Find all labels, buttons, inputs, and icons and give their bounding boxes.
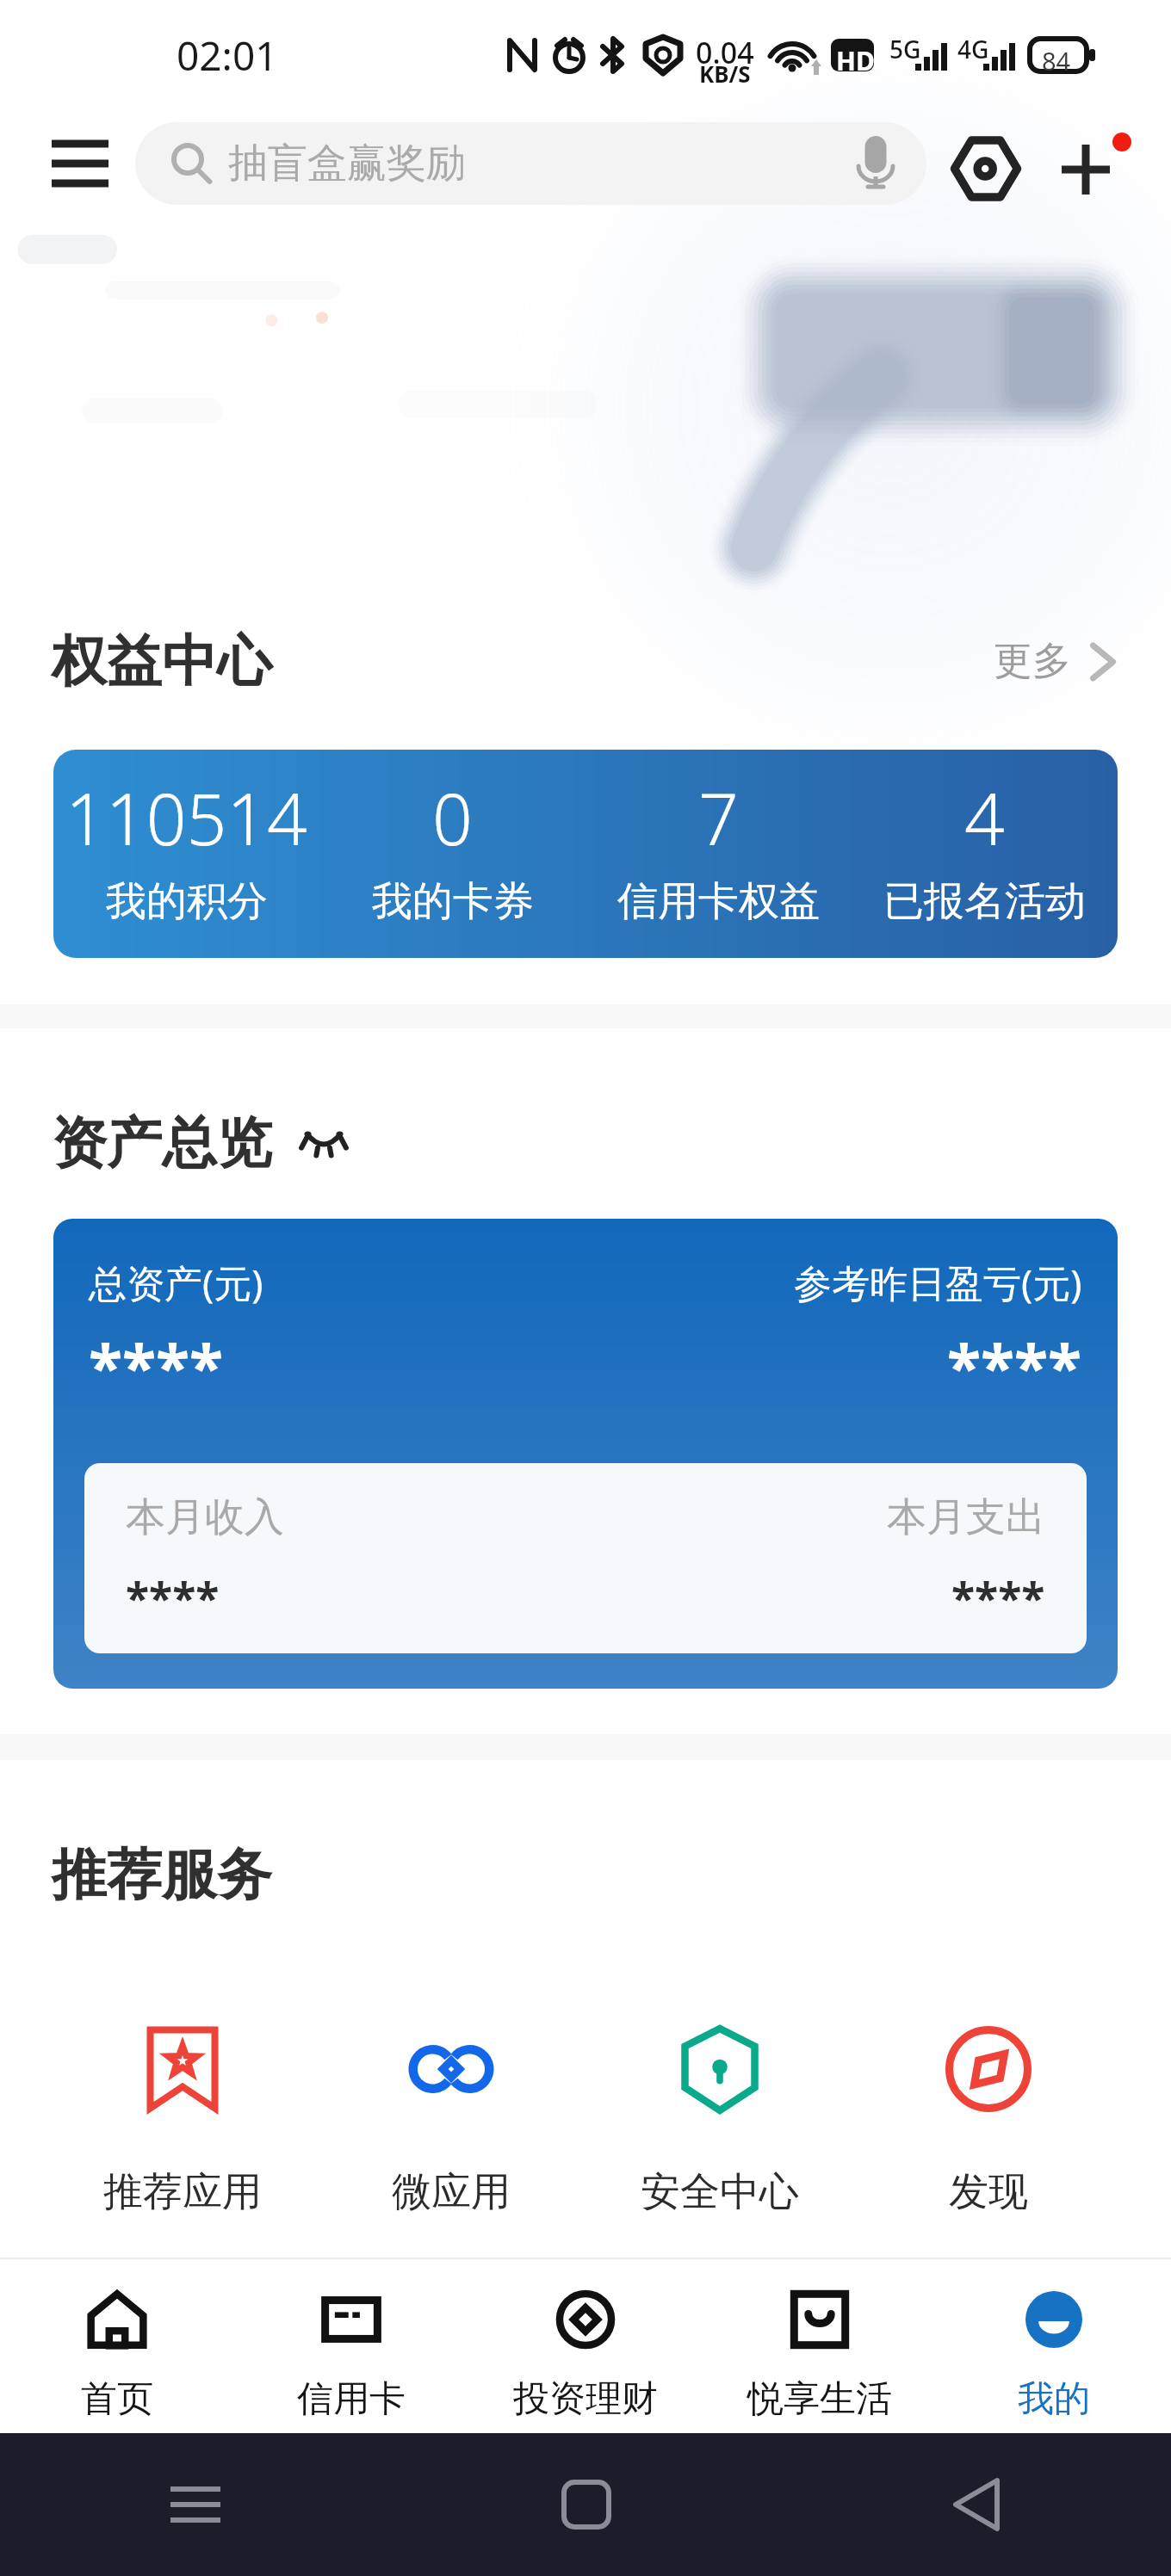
staticText: 4G — [957, 33, 989, 65]
staticText: 安全中心 — [641, 2167, 799, 2217]
staticText: HD — [836, 43, 875, 78]
staticText: 我的积分 — [106, 876, 268, 927]
button[interactable]: 首页 — [0, 2259, 234, 2433]
staticText: 本月收入 — [126, 1492, 284, 1542]
button[interactable]: 我的 — [937, 2259, 1171, 2433]
staticText: 信用卡 — [297, 2376, 406, 2422]
button[interactable]: Scan — [934, 112, 1038, 215]
button[interactable]: 110514 — [53, 750, 1118, 958]
staticText: 02:01 — [177, 28, 278, 83]
staticText: 抽盲盒赢奖励 — [228, 139, 466, 188]
staticText: 微应用 — [392, 2167, 511, 2217]
staticText: 发现 — [949, 2167, 1028, 2217]
staticText: **** — [947, 1324, 1082, 1408]
button[interactable]: Menu — [29, 116, 131, 211]
staticText: 我的 — [1018, 2376, 1090, 2422]
staticText: 首页 — [81, 2376, 153, 2422]
staticText: 本月支出 — [887, 1492, 1045, 1542]
staticText: 总资产(元) — [89, 1257, 263, 1308]
staticText: 推荐服务 — [52, 1840, 272, 1910]
staticText: 悦享生活 — [747, 2376, 892, 2422]
staticText: 7 — [698, 769, 739, 866]
button[interactable]: 总资产(元) — [53, 1219, 1118, 1689]
staticText: 资产总览 — [52, 1109, 272, 1178]
staticText: 4 — [964, 769, 1005, 866]
staticText: 参考昨日盈亏(元) — [794, 1257, 1082, 1308]
staticText: **** — [951, 1568, 1045, 1627]
staticText: 110514 — [65, 769, 307, 866]
staticText: 0.04 — [696, 33, 754, 72]
button[interactable]: 0 — [319, 750, 585, 958]
button[interactable]: 110514 — [53, 750, 319, 958]
button[interactable]: 本月收入 — [84, 1463, 1087, 1653]
button[interactable]: 微应用 — [317, 2026, 585, 2217]
staticText: 信用卡权益 — [617, 876, 820, 927]
button[interactable]: 投资理财 — [468, 2259, 703, 2433]
button[interactable]: 信用卡 — [234, 2259, 468, 2433]
staticText: 我的卡券 — [372, 876, 534, 927]
button[interactable]: 推荐应用 — [48, 2026, 317, 2217]
button[interactable]: Hide balance — [289, 1119, 358, 1167]
staticText: 5G — [889, 33, 921, 65]
button[interactable]: Add — [1038, 116, 1132, 211]
staticText: KB/S — [699, 59, 751, 89]
staticText: 更多 — [994, 637, 1071, 686]
staticText: **** — [89, 1324, 224, 1408]
button[interactable]: 7 — [585, 750, 852, 958]
button[interactable]: 更多 — [994, 637, 1118, 686]
button[interactable]: 悦享生活 — [703, 2259, 937, 2433]
staticText: **** — [126, 1568, 220, 1627]
staticText: 84 — [1042, 44, 1071, 77]
staticText: 推荐应用 — [103, 2167, 262, 2217]
button[interactable]: 安全中心 — [585, 2026, 854, 2217]
staticText: 投资理财 — [513, 2376, 658, 2422]
staticText: 权益中心 — [52, 627, 272, 696]
button[interactable]: 发现 — [854, 2026, 1123, 2217]
button[interactable]: 4 — [852, 750, 1118, 958]
staticText: 0 — [432, 769, 473, 866]
button[interactable]: 抽盲盒赢奖励 — [135, 122, 926, 205]
staticText: 已报名活动 — [883, 876, 1086, 927]
